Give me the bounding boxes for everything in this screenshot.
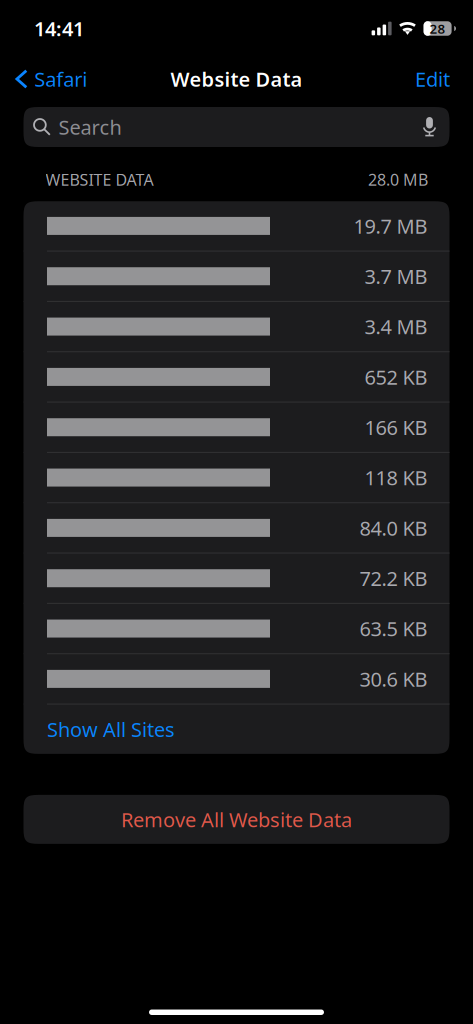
button[interactable]: Show All Sites xyxy=(23,704,449,754)
staticText: 28.0 MB xyxy=(368,169,428,190)
staticText: 28 xyxy=(430,20,446,37)
staticText: 63.5 KB xyxy=(359,615,427,642)
staticText: Safari xyxy=(34,66,87,92)
button[interactable]: 118 KB xyxy=(23,453,449,502)
staticText: 3.7 MB xyxy=(364,263,427,290)
button[interactable]: 652 KB xyxy=(23,352,449,401)
staticText: 3.4 MB xyxy=(364,313,427,340)
button[interactable]: 72.2 KB xyxy=(23,554,449,603)
staticText: 14:41 xyxy=(34,15,84,42)
button[interactable]: Search xyxy=(23,107,411,147)
button[interactable]: 30.6 KB xyxy=(23,654,449,703)
staticText: WEBSITE DATA xyxy=(45,169,153,190)
staticText: 652 KB xyxy=(364,364,427,390)
button[interactable]: 63.5 KB xyxy=(23,604,449,653)
staticText: 30.6 KB xyxy=(359,666,427,692)
button[interactable]: 3.7 MB xyxy=(23,252,449,301)
button[interactable]: 166 KB xyxy=(23,403,449,452)
button[interactable]: Dictate xyxy=(411,107,447,147)
staticText: Website Data xyxy=(170,66,302,92)
button[interactable]: 3.4 MB xyxy=(23,302,449,351)
staticText: 72.2 KB xyxy=(359,565,427,591)
staticText: 118 KB xyxy=(364,464,427,491)
button[interactable]: Remove All Website Data xyxy=(23,795,449,844)
staticText: Edit xyxy=(415,66,450,92)
button[interactable]: 19.7 MB xyxy=(23,201,449,250)
staticText: 19.7 MB xyxy=(353,213,427,239)
button[interactable]: Edit xyxy=(397,57,473,101)
button[interactable]: Safari xyxy=(0,57,99,101)
staticText: Remove All Website Data xyxy=(121,806,352,833)
staticText: 166 KB xyxy=(364,414,427,441)
staticText: Search xyxy=(58,114,121,140)
button[interactable]: 84.0 KB xyxy=(23,503,449,552)
staticText: Show All Sites xyxy=(47,716,175,742)
staticText: 84.0 KB xyxy=(359,515,427,541)
